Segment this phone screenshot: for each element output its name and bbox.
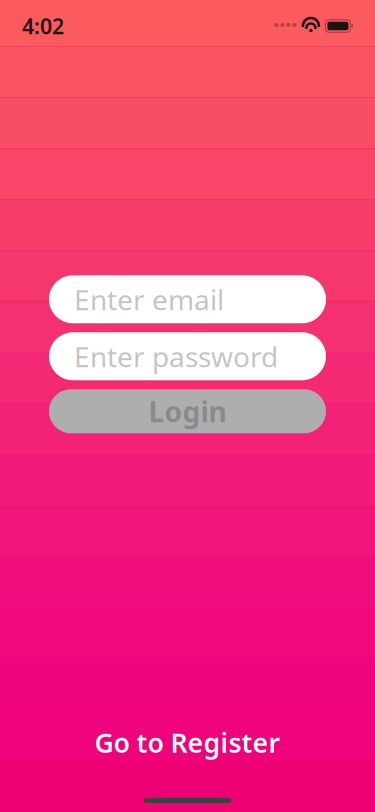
- button[interactable]: Enter password: [49, 332, 326, 380]
- staticText: Login: [148, 393, 226, 430]
- staticText: Enter password: [74, 338, 278, 375]
- button[interactable]: Enter email: [49, 275, 326, 323]
- button[interactable]: Go to Register: [0, 713, 375, 772]
- staticText: Enter email: [74, 281, 224, 318]
- button[interactable]: Login: [49, 389, 326, 433]
- staticText: Go to Register: [94, 725, 280, 760]
- staticText: 4:02: [22, 12, 64, 40]
